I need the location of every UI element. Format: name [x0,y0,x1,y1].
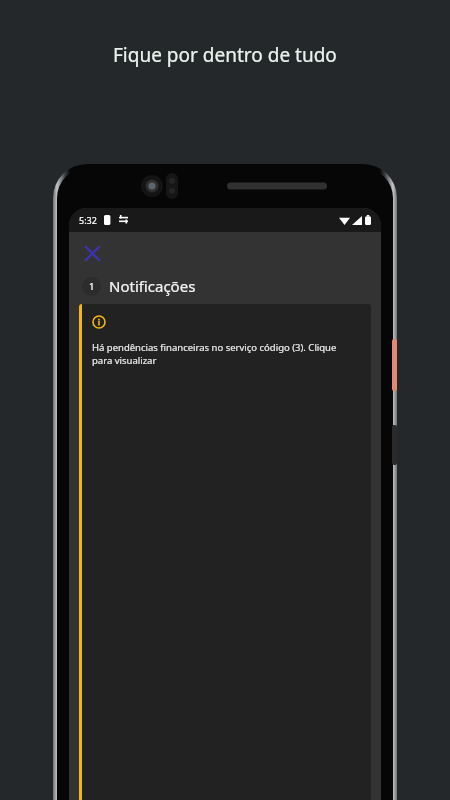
staticText: Há pendências financeiras no serviço cód… [92,341,359,367]
staticText: Fique por dentro de tudo [113,42,337,68]
staticText: 1 [89,280,95,293]
button[interactable]: Fechar [77,238,107,268]
staticText: Notificações [109,276,196,296]
staticText: 5:32 [79,214,97,226]
button[interactable]: Há pendências financeiras no serviço cód… [79,304,371,800]
